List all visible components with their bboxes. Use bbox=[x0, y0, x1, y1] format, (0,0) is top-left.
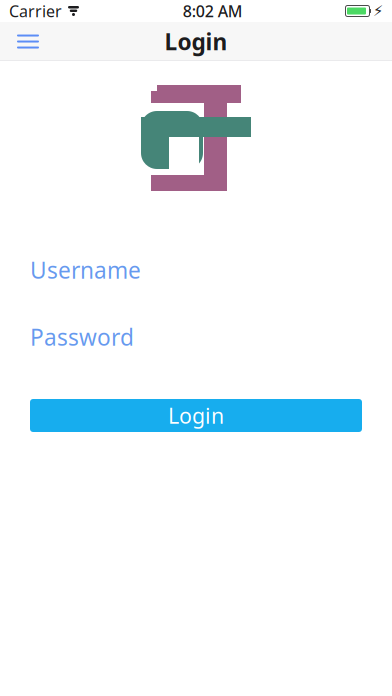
staticText: Carrier bbox=[9, 0, 62, 22]
button[interactable]: Password bbox=[0, 320, 392, 354]
button[interactable]: Username bbox=[0, 253, 392, 287]
staticText: Username bbox=[30, 255, 141, 285]
staticText: Login bbox=[168, 401, 224, 430]
staticText: Login bbox=[164, 26, 227, 56]
staticText: 8:02 AM bbox=[183, 0, 243, 22]
button[interactable]: Menu bbox=[7, 23, 49, 59]
staticText: Password bbox=[30, 322, 134, 352]
staticText: ⚡︎ bbox=[373, 3, 383, 19]
button[interactable]: Login bbox=[30, 399, 362, 432]
